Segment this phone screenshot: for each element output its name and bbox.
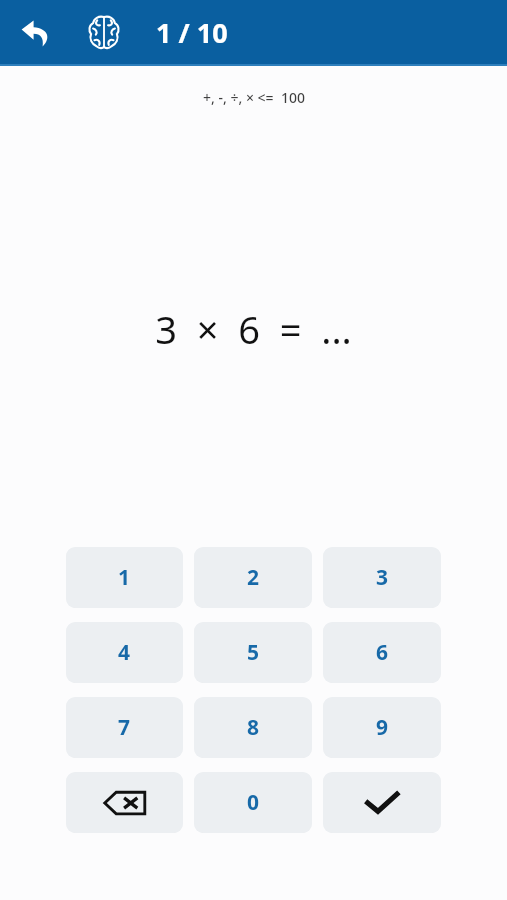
staticText: 1 (118, 563, 131, 592)
button[interactable]: Back (10, 6, 62, 58)
staticText: 4 (118, 638, 131, 667)
staticText: 1 / 10 (156, 14, 228, 51)
button[interactable]: 4 (66, 622, 183, 683)
button[interactable]: 3 (323, 547, 441, 608)
button[interactable]: Brain (80, 8, 128, 56)
staticText: +, -, ÷, × <= 100 (203, 88, 305, 107)
button[interactable]: 0 (194, 772, 312, 833)
button[interactable]: 2 (194, 547, 312, 608)
staticText: 0 (247, 788, 260, 817)
staticText: 8 (247, 713, 260, 742)
button[interactable]: 1 (66, 547, 183, 608)
button[interactable]: Confirm (323, 772, 441, 833)
staticText: 7 (118, 713, 131, 742)
button[interactable]: Backspace (66, 772, 183, 833)
button[interactable]: 8 (194, 697, 312, 758)
button[interactable]: 9 (323, 697, 441, 758)
button[interactable]: 5 (194, 622, 312, 683)
staticText: 3 × 6 = ... (155, 303, 352, 355)
staticText: 3 (376, 563, 389, 592)
button[interactable]: 6 (323, 622, 441, 683)
staticText: 9 (376, 713, 389, 742)
staticText: 2 (247, 563, 260, 592)
staticText: 5 (247, 638, 260, 667)
staticText: 6 (376, 638, 389, 667)
button[interactable]: 7 (66, 697, 183, 758)
